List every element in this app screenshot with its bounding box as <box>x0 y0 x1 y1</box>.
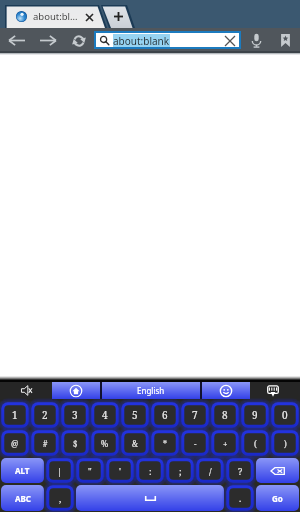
button[interactable]: / <box>195 457 225 484</box>
button[interactable]: 2 <box>30 401 60 429</box>
staticText: * <box>163 438 167 449</box>
button[interactable]: 3 <box>60 401 90 429</box>
button[interactable]: 5 <box>120 401 150 429</box>
button[interactable]: , <box>45 484 75 512</box>
button[interactable]: Go <box>256 485 299 511</box>
staticText: ? <box>238 465 243 477</box>
button[interactable]: 1 <box>0 401 30 429</box>
staticText: : <box>149 465 152 477</box>
staticText: " <box>88 465 92 477</box>
button[interactable]: ) <box>270 429 300 457</box>
button[interactable]: " <box>75 457 105 484</box>
staticText: ' <box>119 465 121 477</box>
button[interactable]: Close tab <box>82 10 96 24</box>
button[interactable]: ABC <box>1 485 44 511</box>
staticText: / <box>209 465 212 477</box>
staticText: ; <box>179 465 182 477</box>
button[interactable]: Clear text <box>219 31 240 50</box>
button[interactable]: 4 <box>90 401 120 429</box>
button[interactable]: . <box>225 484 255 512</box>
button[interactable]: % <box>90 429 120 457</box>
staticText: 7 <box>192 408 198 422</box>
button[interactable]: New tab <box>104 5 132 28</box>
staticText: 6 <box>162 408 168 422</box>
button[interactable]: ' <box>105 457 135 484</box>
button[interactable]: Mute sound <box>15 382 37 399</box>
button[interactable]: Home <box>52 382 100 399</box>
button[interactable]: Emoji <box>202 382 250 399</box>
button[interactable]: about:bl… <box>5 5 99 28</box>
staticText: about:blank <box>113 34 170 47</box>
staticText: ABC <box>15 493 31 504</box>
button[interactable]: Hide keyboard <box>263 382 283 399</box>
staticText: % <box>101 438 109 449</box>
button[interactable]: ? <box>225 457 255 484</box>
staticText: @ <box>11 438 19 449</box>
staticText: 8 <box>222 408 228 422</box>
staticText: 0 <box>282 408 288 422</box>
button[interactable]: Forward <box>32 28 64 53</box>
button[interactable]: * <box>150 429 180 457</box>
button[interactable]: about:blank <box>96 33 239 47</box>
button[interactable]: 0 <box>270 401 300 429</box>
staticText: ( <box>254 438 257 449</box>
button[interactable]: & <box>120 429 150 457</box>
button[interactable]: Voice search <box>243 28 269 53</box>
staticText: about:bl… <box>33 10 78 23</box>
staticText: & <box>132 438 138 449</box>
staticText: 1 <box>12 408 18 422</box>
staticText: . <box>239 492 242 504</box>
button[interactable]: Back <box>0 28 32 53</box>
button[interactable]: @ <box>0 429 30 457</box>
staticText: # <box>43 438 48 449</box>
staticText: 5 <box>132 408 138 422</box>
button[interactable]: ALT <box>1 458 44 483</box>
staticText: 4 <box>102 408 108 422</box>
button[interactable]: ( <box>240 429 270 457</box>
button[interactable]: 8 <box>210 401 240 429</box>
button[interactable]: - <box>180 429 210 457</box>
button[interactable]: 7 <box>180 401 210 429</box>
staticText: , <box>59 492 62 504</box>
button[interactable]: 9 <box>240 401 270 429</box>
button[interactable]: Reload <box>63 28 94 53</box>
staticText: + <box>223 438 228 449</box>
button[interactable]: English <box>102 382 200 399</box>
staticText: ALT <box>15 465 30 476</box>
button[interactable]: ; <box>165 457 195 484</box>
button[interactable]: $ <box>60 429 90 457</box>
button[interactable]: + <box>210 429 240 457</box>
button[interactable]: | <box>45 457 75 484</box>
button[interactable]: Space <box>76 485 224 511</box>
button[interactable]: Backspace <box>256 458 299 483</box>
staticText: English <box>137 385 165 396</box>
button[interactable]: 6 <box>150 401 180 429</box>
button[interactable]: # <box>30 429 60 457</box>
staticText: ) <box>284 438 287 449</box>
staticText: 3 <box>72 408 78 422</box>
staticText: 9 <box>252 408 258 422</box>
button[interactable]: Bookmarks <box>272 28 298 53</box>
staticText: $ <box>73 438 78 449</box>
staticText: | <box>57 465 63 477</box>
button[interactable]: : <box>135 457 165 484</box>
staticText: - <box>194 438 197 449</box>
staticText: Go <box>272 493 283 504</box>
staticText: 2 <box>42 408 48 422</box>
